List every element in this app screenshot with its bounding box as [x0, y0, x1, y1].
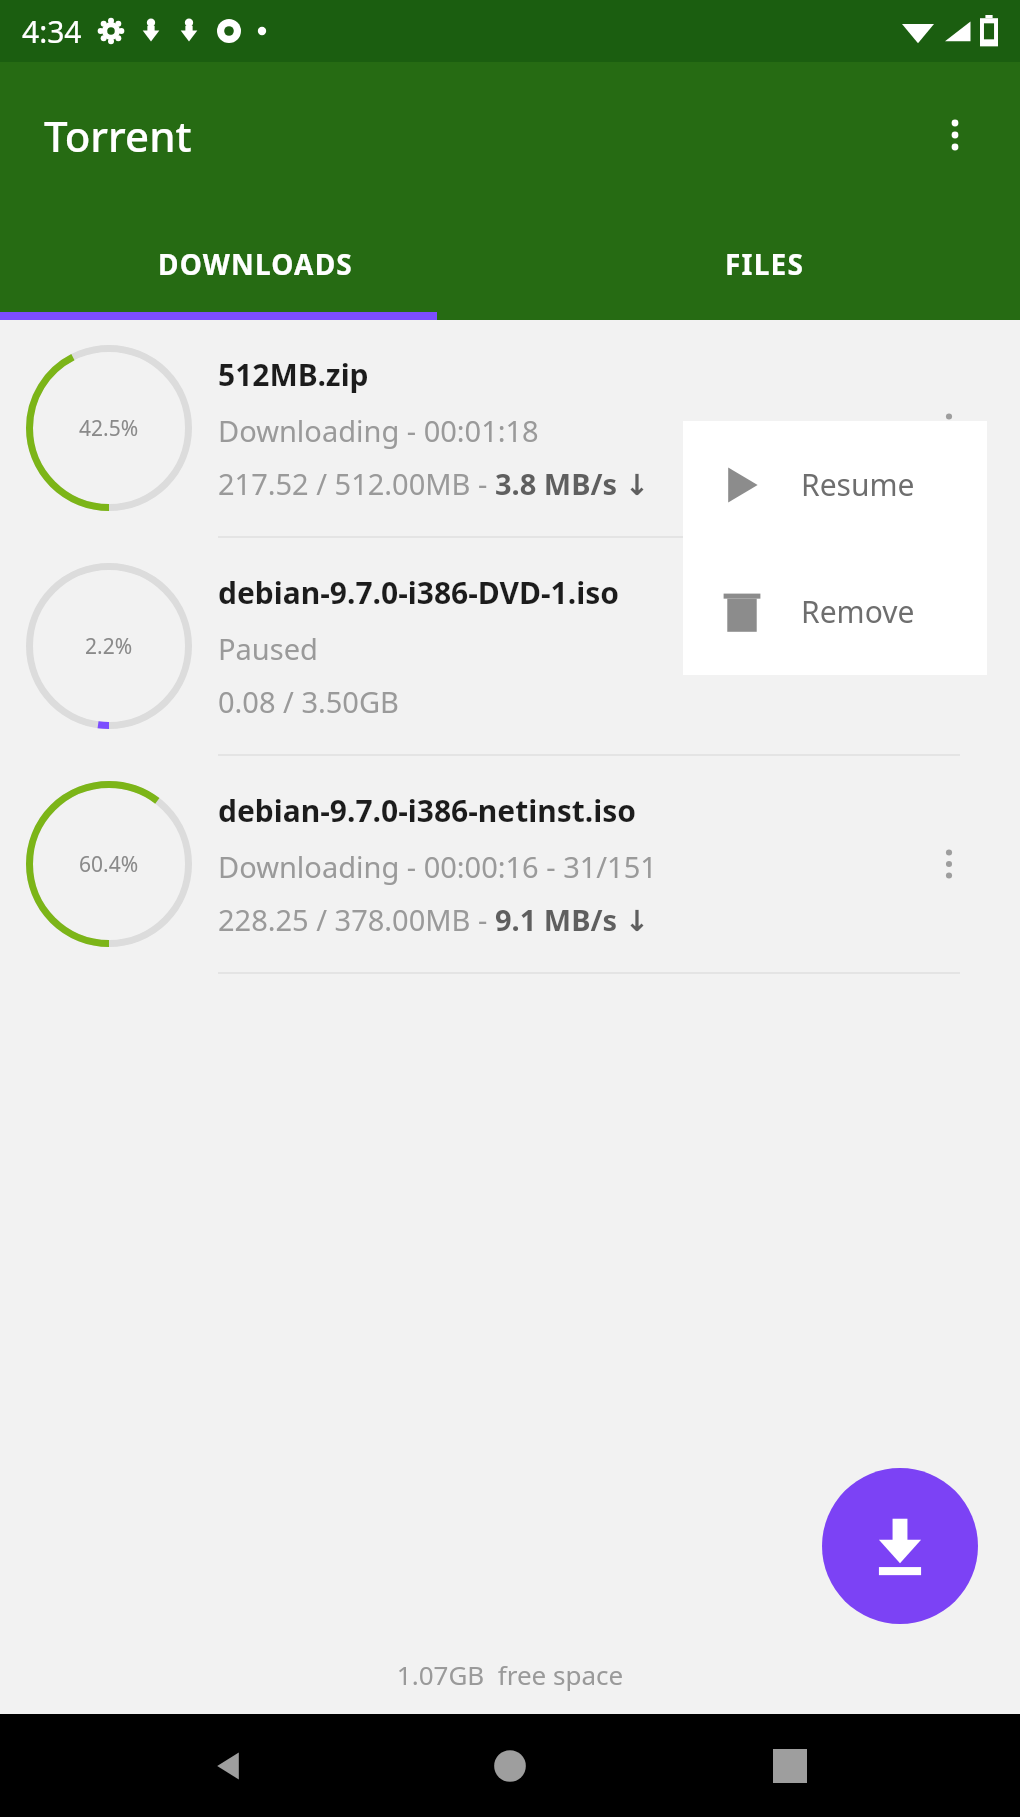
- staticText: 60.4%: [79, 850, 139, 879]
- staticText: 2.2%: [85, 632, 133, 661]
- staticText: 1.07GB free space: [0, 1657, 1020, 1692]
- staticText: debian-9.7.0-i386-netinst.iso: [218, 790, 637, 831]
- staticText: Downloading - 00:01:18: [218, 411, 539, 450]
- staticText: 4:34: [22, 11, 82, 52]
- staticText: FILES: [725, 245, 805, 283]
- button[interactable]: Add download: [822, 1468, 978, 1624]
- staticText: Resume: [801, 464, 915, 505]
- button[interactable]: Remove: [683, 548, 987, 675]
- staticText: 228.25 / 378.00MB -: [218, 900, 495, 939]
- staticText: 9.1 MB/s ↓: [495, 900, 649, 939]
- button[interactable]: 60.4%: [0, 756, 1020, 972]
- staticText: DOWNLOADS: [158, 245, 353, 283]
- staticText: 3.8 MB/s ↓: [495, 464, 649, 503]
- button[interactable]: Resume: [683, 421, 987, 548]
- staticText: Remove: [801, 591, 915, 632]
- staticText: Torrent: [44, 107, 192, 164]
- staticText: debian-9.7.0-i386-DVD-1.iso: [218, 572, 619, 613]
- button[interactable]: Back: [180, 1716, 280, 1816]
- button[interactable]: Item options: [904, 320, 994, 536]
- button[interactable]: Recents: [740, 1716, 840, 1816]
- button[interactable]: Item options: [904, 538, 994, 754]
- button[interactable]: More options: [910, 90, 1000, 180]
- staticText: 217.52 / 512.00MB -: [218, 464, 495, 503]
- button[interactable]: FILES: [510, 208, 1020, 320]
- staticText: 512MB.zip: [218, 354, 369, 395]
- staticText: 0.08 / 3.50GB: [218, 682, 399, 721]
- staticText: Paused: [218, 629, 318, 668]
- button[interactable]: DOWNLOADS: [0, 208, 510, 320]
- button[interactable]: 42.5%: [0, 320, 1020, 536]
- button[interactable]: Item options: [904, 756, 994, 972]
- staticText: 42.5%: [79, 414, 139, 443]
- staticText: Downloading - 00:00:16 - 31/151: [218, 847, 657, 886]
- button[interactable]: 2.2%: [0, 538, 1020, 754]
- button[interactable]: Home: [460, 1716, 560, 1816]
